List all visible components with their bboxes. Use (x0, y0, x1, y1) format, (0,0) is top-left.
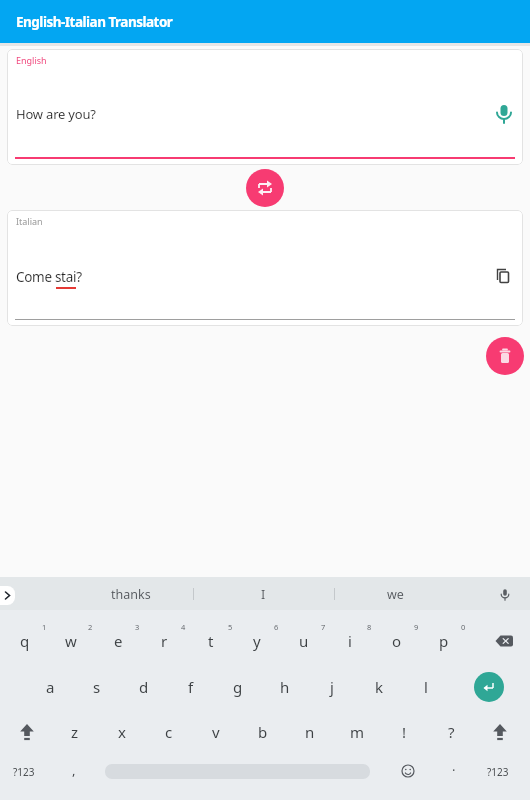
button[interactable]: ?123 (487, 765, 509, 779)
staticText: English (16, 54, 47, 66)
button[interactable]: u (287, 627, 321, 655)
staticText: m (350, 722, 365, 742)
button[interactable] (401, 764, 415, 778)
button[interactable]: ? (434, 718, 468, 746)
staticText: x (118, 722, 126, 742)
staticText: a (46, 677, 55, 697)
button[interactable] (474, 672, 504, 702)
button[interactable] (491, 723, 509, 741)
button[interactable]: d (127, 673, 161, 701)
staticText: k (375, 677, 384, 697)
staticText: r (161, 631, 168, 651)
staticText: u (299, 631, 309, 651)
staticText: q (20, 631, 30, 651)
staticText: l (424, 677, 428, 697)
button[interactable]: f (174, 673, 208, 701)
button[interactable]: i (333, 627, 367, 655)
staticText: e (114, 631, 123, 651)
staticText: thanks (111, 586, 151, 603)
button[interactable]: c (152, 718, 186, 746)
staticText: t (208, 631, 214, 651)
staticText: 1 (42, 622, 47, 632)
button[interactable]: j (315, 673, 349, 701)
button[interactable]: we (355, 583, 435, 605)
button[interactable]: v (199, 718, 233, 746)
staticText: z (71, 722, 79, 742)
button[interactable]: t (194, 627, 228, 655)
staticText: 0 (461, 622, 466, 632)
staticText: English-Italian Translator (16, 13, 173, 31)
button[interactable]: b (246, 718, 280, 746)
staticText: b (258, 722, 268, 742)
button[interactable]: z (58, 718, 92, 746)
button[interactable]: w (54, 627, 88, 655)
staticText: 8 (367, 622, 372, 632)
button[interactable]: s (80, 673, 114, 701)
button[interactable]: g (221, 673, 255, 701)
button[interactable]: k (362, 673, 396, 701)
button[interactable]: m (340, 718, 374, 746)
button[interactable]: p (427, 627, 461, 655)
staticText: s (93, 677, 101, 697)
staticText: g (233, 677, 243, 697)
staticText: ! (402, 722, 407, 742)
button[interactable]: o (380, 627, 414, 655)
staticText: 5 (228, 622, 233, 632)
button[interactable]: ! (387, 718, 421, 746)
staticText: 2 (88, 622, 93, 632)
button[interactable] (246, 169, 284, 207)
button[interactable]: n (293, 718, 327, 746)
staticText: y (253, 631, 261, 651)
staticText: we (387, 586, 404, 603)
button[interactable]: r (147, 627, 181, 655)
staticText: Come stai? (16, 268, 82, 286)
staticText: i (348, 631, 352, 651)
staticText: Italian (16, 215, 43, 227)
button[interactable]: h (268, 673, 302, 701)
staticText: f (188, 677, 194, 697)
staticText: 9 (414, 622, 419, 632)
staticText: 3 (135, 622, 140, 632)
button[interactable]: English-Italian Translator (0, 0, 530, 43)
button[interactable]: q (8, 627, 42, 655)
button[interactable]: y (240, 627, 274, 655)
staticText: d (139, 677, 149, 697)
button[interactable] (0, 586, 15, 605)
button[interactable] (493, 103, 515, 125)
staticText: p (439, 631, 449, 651)
staticText: o (392, 631, 402, 651)
staticText: j (330, 677, 334, 697)
staticText: I (261, 586, 266, 603)
staticText: ? (448, 722, 455, 742)
staticText: How are you? (16, 105, 96, 123)
button[interactable]: , (72, 761, 76, 779)
button[interactable]: a (33, 673, 67, 701)
staticText: n (305, 722, 315, 742)
button[interactable]: thanks (91, 583, 171, 605)
button[interactable]: . (452, 757, 456, 775)
button[interactable]: l (409, 673, 443, 701)
staticText: c (165, 722, 173, 742)
staticText: v (212, 722, 220, 742)
button[interactable] (494, 633, 514, 649)
staticText: h (280, 677, 290, 697)
staticText: 6 (274, 622, 279, 632)
button[interactable] (495, 268, 511, 284)
staticText: 7 (321, 622, 326, 632)
button[interactable] (486, 337, 524, 375)
button[interactable]: x (105, 718, 139, 746)
button[interactable]: ?123 (13, 765, 35, 779)
button[interactable] (498, 588, 512, 602)
button[interactable] (18, 723, 36, 741)
button[interactable]: e (101, 627, 135, 655)
staticText: 4 (181, 622, 186, 632)
staticText: w (65, 631, 77, 651)
button[interactable]: I (223, 583, 303, 605)
